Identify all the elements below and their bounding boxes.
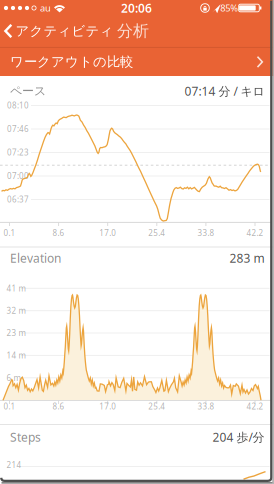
button[interactable]: Back [2,20,134,42]
staticText: 8.6 [53,227,65,238]
staticText: 23 m [6,328,25,338]
staticText: 17.0 [99,227,116,238]
staticText: 08:10 [7,100,29,111]
staticText: 0.1 [3,401,15,412]
staticText: 07:14 分 / キロ [184,83,264,99]
staticText: 07:00 [7,171,29,181]
staticText: 07:46 [7,124,29,134]
staticText: 25.4 [148,401,165,412]
staticText: 85% [220,2,238,14]
staticText: 42.2 [246,401,263,412]
staticText: 283 m [229,250,264,266]
staticText: 33.8 [197,227,214,238]
staticText: 17.0 [99,401,116,412]
staticText: ペース [10,84,46,98]
staticText: 8.6 [53,401,65,412]
staticText: 204 歩/分 [212,429,264,445]
staticText: 25.4 [148,227,165,238]
staticText: 41 m [6,283,25,294]
staticText: 06:37 [7,194,29,205]
staticText: 42.2 [246,227,263,238]
staticText: 20:06 [121,0,152,16]
staticText: Elevation [10,250,61,266]
staticText: ワークアウトの比較 [10,53,133,70]
staticText: Steps [10,429,41,445]
staticText: au [40,2,51,14]
staticText: 214 [6,460,21,470]
button[interactable]: ワークアウトの比較 [0,47,274,75]
staticText: 0.1 [3,227,15,238]
staticText: 32 m [6,305,25,316]
staticText: アクティビティ [15,23,113,39]
staticText: 33.8 [197,401,214,412]
staticText: 6 m [6,372,20,383]
staticText: 14 m [6,350,25,361]
staticText: 分析 [117,21,149,41]
staticText: 07:23 [7,147,29,158]
